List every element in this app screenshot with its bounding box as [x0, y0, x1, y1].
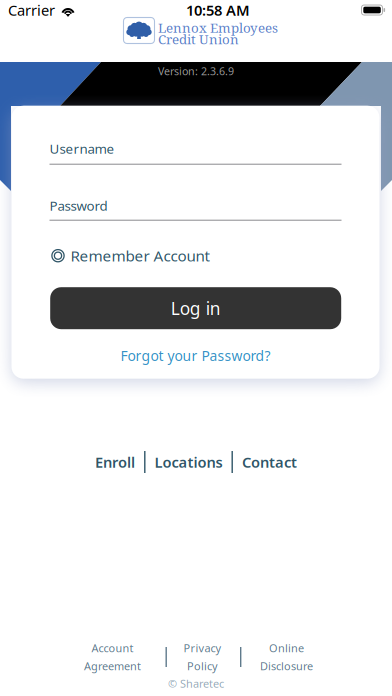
staticText: Lennox Employees: [158, 18, 278, 37]
staticText: Username: [49, 140, 114, 157]
button[interactable]: Forgot your Password?: [49, 346, 341, 366]
staticText: Credit Union: [158, 30, 239, 48]
button[interactable]: Privacy: [172, 644, 232, 670]
button[interactable]: Locations: [145, 449, 231, 475]
staticText: Carrier: [8, 0, 55, 20]
staticText: Forgot your Password?: [120, 346, 270, 365]
staticText: Disclosure: [260, 658, 313, 673]
staticText: Online: [269, 641, 304, 655]
staticText: Password: [49, 197, 107, 214]
staticText: Privacy: [183, 641, 221, 655]
button[interactable]: Log in: [50, 287, 341, 329]
staticText: Contact: [242, 452, 297, 472]
staticText: Version: 2.3.6.9: [158, 64, 234, 78]
button[interactable]: Enroll: [86, 449, 144, 475]
staticText: © Sharetec: [168, 676, 224, 691]
staticText: Account: [91, 641, 133, 655]
button[interactable]: Contact: [233, 449, 306, 475]
staticText: Remember Account: [70, 245, 209, 266]
staticText: Locations: [154, 452, 222, 472]
staticText: Log in: [171, 297, 221, 320]
button[interactable]: Online: [249, 644, 323, 670]
staticText: Agreement: [84, 658, 141, 673]
button[interactable]: Account: [75, 644, 149, 670]
staticText: Enroll: [95, 452, 135, 472]
button[interactable]: Remember Account: [51, 246, 343, 266]
staticText: Policy: [187, 658, 218, 673]
staticText: 10:58 AM: [186, 0, 250, 20]
